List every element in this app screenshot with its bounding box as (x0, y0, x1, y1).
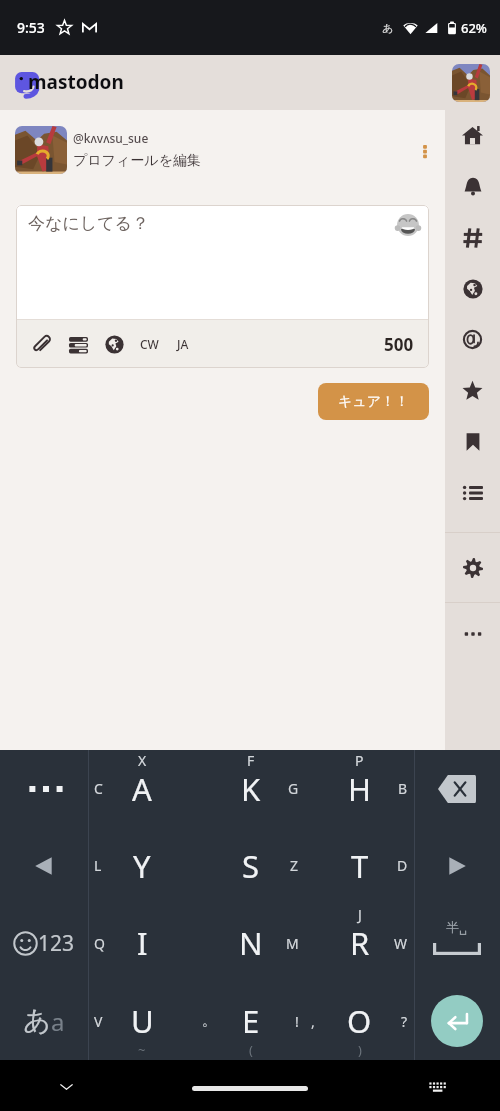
staticText: ~ (138, 1041, 146, 1059)
staticText: F (247, 751, 255, 770)
other: Delete (438, 775, 476, 803)
other: Symbols (27, 772, 61, 806)
staticText: @kʌvʌsu_sue (73, 130, 149, 146)
staticText: H (348, 768, 371, 810)
other: Switch input mode (23, 1004, 65, 1038)
button[interactable]: T (305, 827, 414, 904)
button[interactable]: Switch keyboard (424, 1073, 450, 1099)
staticText: T (351, 845, 369, 887)
button[interactable]: Switch input mode (0, 982, 88, 1060)
staticText: I (137, 922, 148, 964)
staticText: A (132, 768, 152, 810)
button[interactable]: N (196, 904, 305, 982)
staticText: a (51, 1005, 65, 1038)
button[interactable]: More options (405, 130, 445, 170)
other: Cursor left (33, 855, 55, 877)
button[interactable]: Live feeds (445, 263, 500, 314)
staticText: L (94, 856, 102, 875)
staticText: ! (295, 1012, 299, 1031)
button[interactable]: Delete (414, 750, 500, 827)
staticText: , (311, 1012, 315, 1031)
button[interactable]: Space (414, 904, 500, 982)
staticText: P (355, 751, 364, 770)
button[interactable]: U (88, 982, 196, 1060)
button[interactable]: Cursor left (0, 827, 88, 904)
staticText: O (347, 1000, 372, 1042)
button[interactable]: Post visibility (96, 326, 132, 362)
staticText: X (138, 751, 147, 770)
button[interactable]: More (445, 603, 500, 665)
staticText: 62% (461, 19, 487, 37)
staticText: R (350, 922, 370, 964)
button[interactable]: H (305, 750, 414, 827)
button[interactable]: E (196, 982, 305, 1060)
staticText: 。 (202, 1012, 216, 1030)
staticText: あ (382, 21, 394, 35)
staticText: B (398, 779, 408, 798)
other: Numbers and symbols (13, 929, 75, 958)
staticText: N (239, 922, 263, 964)
button[interactable]: Notifications (445, 161, 500, 212)
staticText: プロフィールを編集 (73, 152, 201, 170)
staticText: JA (177, 336, 189, 352)
staticText: ( (249, 1041, 253, 1059)
button[interactable]: @kʌvʌsu_sue (0, 110, 445, 190)
staticText: 今なにしてる？ (28, 213, 149, 234)
staticText: W (394, 934, 408, 953)
button[interactable]: Hide keyboard (53, 1073, 79, 1099)
staticText: Q (94, 934, 105, 953)
staticText: M (286, 934, 299, 953)
button[interactable]: Cursor right (414, 827, 500, 904)
button[interactable]: Symbols (0, 750, 88, 827)
button[interactable]: Favourites (445, 365, 500, 416)
button[interactable]: O (305, 982, 414, 1060)
staticText: E (242, 1000, 260, 1042)
button[interactable]: Lists (445, 467, 500, 518)
button[interactable]: Numbers and symbols (0, 904, 88, 982)
staticText: S (242, 845, 260, 887)
button[interactable]: R (305, 904, 414, 982)
button[interactable]: Bookmarks (445, 416, 500, 467)
button[interactable]: Home (445, 110, 500, 161)
staticText: V (94, 1012, 103, 1031)
staticText: CW (140, 336, 159, 352)
staticText: Z (290, 856, 299, 875)
button[interactable]: Enter (414, 982, 500, 1060)
staticText: C (94, 779, 103, 798)
staticText: J (358, 905, 362, 924)
staticText: 500 (384, 333, 414, 356)
staticText: 半 (446, 919, 459, 935)
staticText: 9:53 (17, 18, 45, 37)
button[interactable]: Y (88, 827, 196, 904)
button[interactable]: I (88, 904, 196, 982)
button[interactable]: Add poll (60, 326, 96, 362)
staticText: U (131, 1000, 154, 1042)
button[interactable]: A (88, 750, 196, 827)
staticText: mastodon (28, 69, 124, 95)
button[interactable]: S (196, 827, 305, 904)
button[interactable]: Attach file (24, 326, 60, 362)
staticText: ␣ (459, 920, 468, 935)
button[interactable]: キュア！！ (318, 383, 429, 420)
staticText: G (288, 779, 299, 798)
staticText: キュア！！ (338, 393, 409, 411)
button[interactable]: JA (166, 327, 200, 361)
staticText: D (397, 856, 408, 875)
button[interactable]: Mentions (445, 314, 500, 365)
staticText: ? (401, 1012, 408, 1031)
button[interactable]: CW (132, 327, 166, 361)
other: Enter (431, 995, 483, 1047)
other: Space (433, 919, 481, 955)
staticText: 123 (38, 929, 75, 958)
button[interactable]: Account (452, 64, 490, 102)
button[interactable]: K (196, 750, 305, 827)
staticText: K (241, 768, 261, 810)
staticText: あ (23, 1004, 51, 1038)
staticText: ) (358, 1041, 362, 1059)
other: Cursor right (446, 855, 468, 877)
button[interactable]: Explore (445, 212, 500, 263)
staticText: Y (133, 845, 151, 887)
button[interactable]: Settings (445, 533, 500, 602)
